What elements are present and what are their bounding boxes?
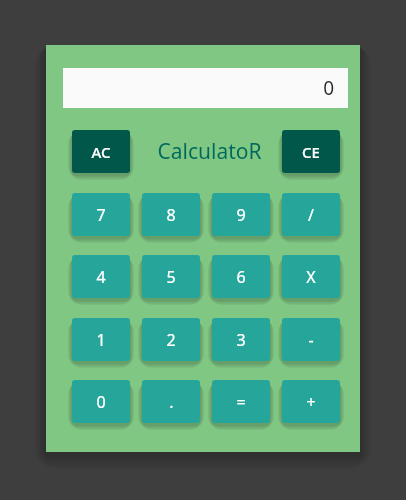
- button[interactable]: CE: [282, 130, 340, 173]
- button[interactable]: 0: [63, 68, 348, 108]
- button[interactable]: =: [212, 380, 270, 423]
- staticText: 0: [96, 391, 106, 413]
- staticText: 5: [166, 266, 176, 288]
- staticText: 4: [96, 266, 106, 288]
- staticText: X: [306, 266, 316, 288]
- button[interactable]: /: [282, 193, 340, 236]
- staticText: 0: [323, 75, 334, 101]
- staticText: 7: [96, 204, 106, 226]
- staticText: 9: [236, 204, 246, 226]
- staticText: /: [308, 204, 314, 226]
- staticText: +: [306, 391, 316, 413]
- button[interactable]: 0: [72, 380, 130, 423]
- button[interactable]: 7: [72, 193, 130, 236]
- staticText: 8: [166, 204, 176, 226]
- staticText: AC: [91, 142, 111, 162]
- staticText: CE: [302, 142, 320, 162]
- button[interactable]: 9: [212, 193, 270, 236]
- staticText: .: [169, 391, 174, 413]
- button[interactable]: 4: [72, 255, 130, 298]
- staticText: 2: [166, 329, 176, 351]
- button[interactable]: .: [142, 380, 200, 423]
- button[interactable]: -: [282, 318, 340, 361]
- button[interactable]: 6: [212, 255, 270, 298]
- button[interactable]: 1: [72, 318, 130, 361]
- button[interactable]: +: [282, 380, 340, 423]
- staticText: CalculatoR: [157, 137, 262, 166]
- button[interactable]: 2: [142, 318, 200, 361]
- staticText: 1: [96, 329, 106, 351]
- staticText: 3: [236, 329, 246, 351]
- button[interactable]: 8: [142, 193, 200, 236]
- staticText: 6: [236, 266, 246, 288]
- staticText: -: [308, 329, 314, 351]
- button[interactable]: AC: [72, 130, 130, 173]
- button[interactable]: 5: [142, 255, 200, 298]
- button[interactable]: X: [282, 255, 340, 298]
- staticText: =: [236, 391, 246, 413]
- button[interactable]: 3: [212, 318, 270, 361]
